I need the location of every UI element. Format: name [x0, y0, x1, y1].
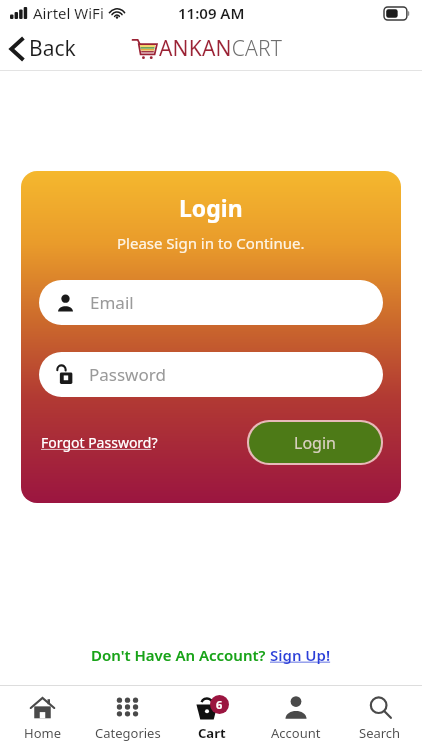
- staticText: Sign Up!: [270, 645, 331, 665]
- staticText: Back: [29, 34, 76, 63]
- button[interactable]: Email: [39, 280, 383, 325]
- staticText: Please Sign in to Continue.: [117, 233, 305, 253]
- button[interactable]: Forgot Password?: [39, 427, 160, 458]
- staticText: Search: [359, 724, 401, 742]
- button[interactable]: Home: [0, 686, 85, 750]
- button[interactable]: Login: [249, 422, 381, 463]
- staticText: Login: [294, 432, 336, 454]
- staticText: Cart: [198, 724, 226, 742]
- staticText: Password: [89, 363, 166, 386]
- button[interactable]: Account: [254, 686, 338, 750]
- staticText: Don't Have An Account?: [91, 645, 266, 665]
- staticText: Categories: [95, 724, 161, 742]
- button[interactable]: 6: [170, 686, 254, 750]
- staticText: ANKANCART: [159, 34, 283, 63]
- staticText: Account: [271, 724, 321, 742]
- staticText: 6: [216, 697, 223, 712]
- button[interactable]: Categories: [85, 686, 170, 750]
- staticText: Email: [90, 291, 134, 314]
- button[interactable]: Password: [39, 352, 383, 397]
- staticText: Airtel WiFi: [33, 3, 104, 23]
- button[interactable]: Back: [0, 28, 88, 69]
- staticText: Login: [179, 192, 243, 223]
- staticText: 11:09 AM: [178, 3, 245, 23]
- staticText: Home: [24, 724, 61, 742]
- button[interactable]: Search: [338, 686, 422, 750]
- staticText: Forgot Password?: [41, 433, 158, 452]
- button[interactable]: Don't Have An Account?: [81, 641, 341, 669]
